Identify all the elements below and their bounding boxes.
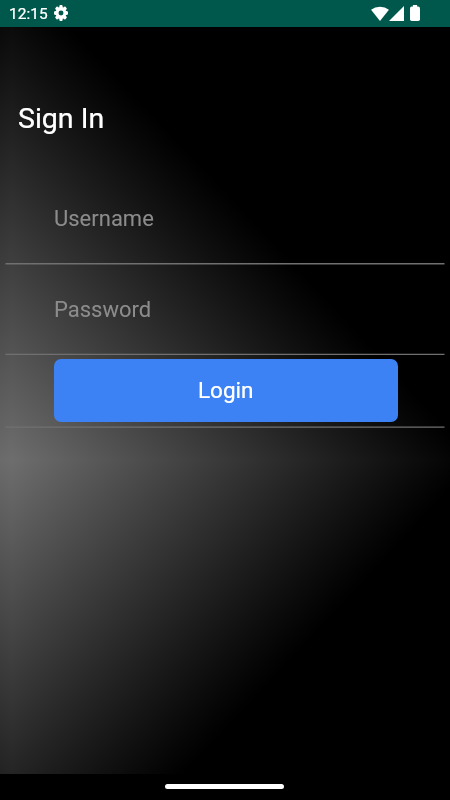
button[interactable]: Login [54,359,398,422]
staticText: Login [198,377,254,403]
staticText: Password [54,297,152,323]
staticText: 12:15 [9,5,48,23]
staticText: Username [54,206,154,232]
staticText: Sign In [18,102,105,135]
other: Settings [54,5,68,21]
